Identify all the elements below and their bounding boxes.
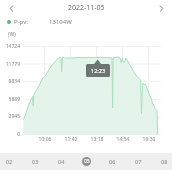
- staticText: 13:18: [84, 136, 110, 143]
- staticText: 11779: [0, 61, 20, 68]
- button[interactable]: Previous day: [0, 0, 22, 16]
- button[interactable]: 02: [1, 153, 17, 170]
- staticText: 03: [32, 158, 39, 165]
- button[interactable]: 03: [27, 153, 43, 170]
- staticText: 0: [0, 131, 20, 138]
- staticText: 07: [135, 158, 142, 165]
- staticText: P-pv:: [14, 18, 28, 26]
- button[interactable]: 05: [82, 157, 91, 166]
- staticText: 02: [6, 158, 13, 165]
- staticText: 05: [84, 158, 90, 165]
- staticText: 10:06: [32, 136, 58, 143]
- button[interactable]: Next day: [150, 0, 172, 16]
- staticText: 8834: [0, 78, 20, 85]
- staticText: 14724: [0, 43, 20, 50]
- button[interactable]: 08: [156, 153, 172, 170]
- staticText: 13104W: [49, 18, 72, 26]
- staticText: 14:54: [110, 136, 136, 143]
- staticText: 12:23: [91, 67, 106, 74]
- staticText: 2022-11-05: [68, 3, 105, 13]
- staticText: 2945: [0, 113, 20, 120]
- button[interactable]: 04: [53, 153, 69, 170]
- staticText: 08: [161, 158, 168, 165]
- staticText: 11:42: [58, 136, 84, 143]
- staticText: (W): [8, 31, 16, 38]
- button[interactable]: 07: [130, 153, 146, 170]
- staticText: 5889: [0, 96, 20, 103]
- staticText: 04: [58, 158, 65, 165]
- staticText: 16:30: [136, 136, 162, 143]
- button[interactable]: 06: [104, 153, 120, 170]
- staticText: 06: [109, 158, 116, 165]
